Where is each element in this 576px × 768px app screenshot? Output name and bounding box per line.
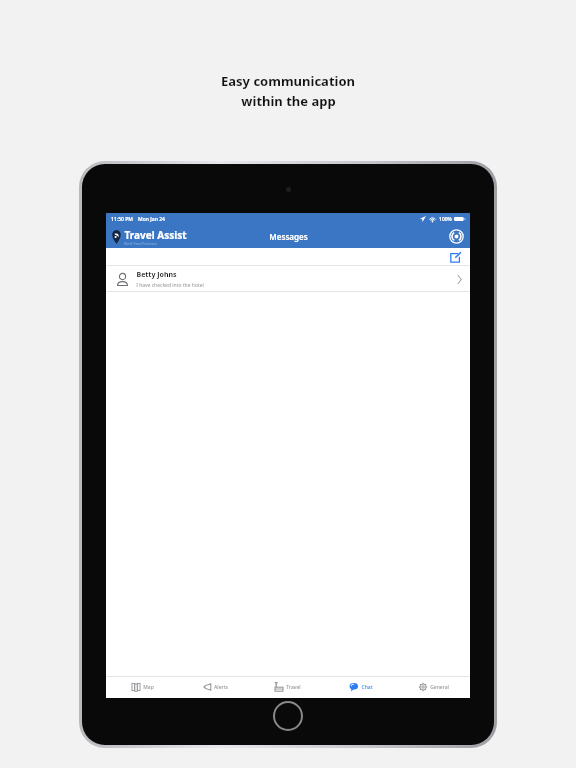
staticText: Map [143,684,154,691]
staticText: Messages [269,231,308,242]
button[interactable]: Travel Assist [111,228,187,246]
button[interactable]: General [397,676,470,698]
button[interactable]: Emergency broadcast [449,229,464,244]
staticText: Travel Assist [124,228,187,242]
button[interactable]: Compose new message [449,251,462,264]
button[interactable]: Betty Johns [106,266,470,292]
staticText: General [430,684,449,691]
staticText: World Travel Protection [124,242,157,246]
staticText: Alerts [214,684,228,691]
staticText: within the app [241,92,336,110]
staticText: 11:50 PM [111,216,133,223]
staticText: Chat [361,684,373,691]
staticText: Easy communication [221,72,355,90]
button[interactable]: Map [106,676,178,698]
staticText: Betty Johns [136,270,177,280]
button[interactable]: Travel [251,676,324,698]
staticText: Mon Jan 24 [138,216,165,223]
button[interactable]: Chat [324,676,397,698]
staticText: I have checked into the hotel [136,282,204,289]
staticText: 100% [439,216,452,223]
staticText: Travel [286,684,301,691]
button[interactable]: Alerts [178,676,251,698]
